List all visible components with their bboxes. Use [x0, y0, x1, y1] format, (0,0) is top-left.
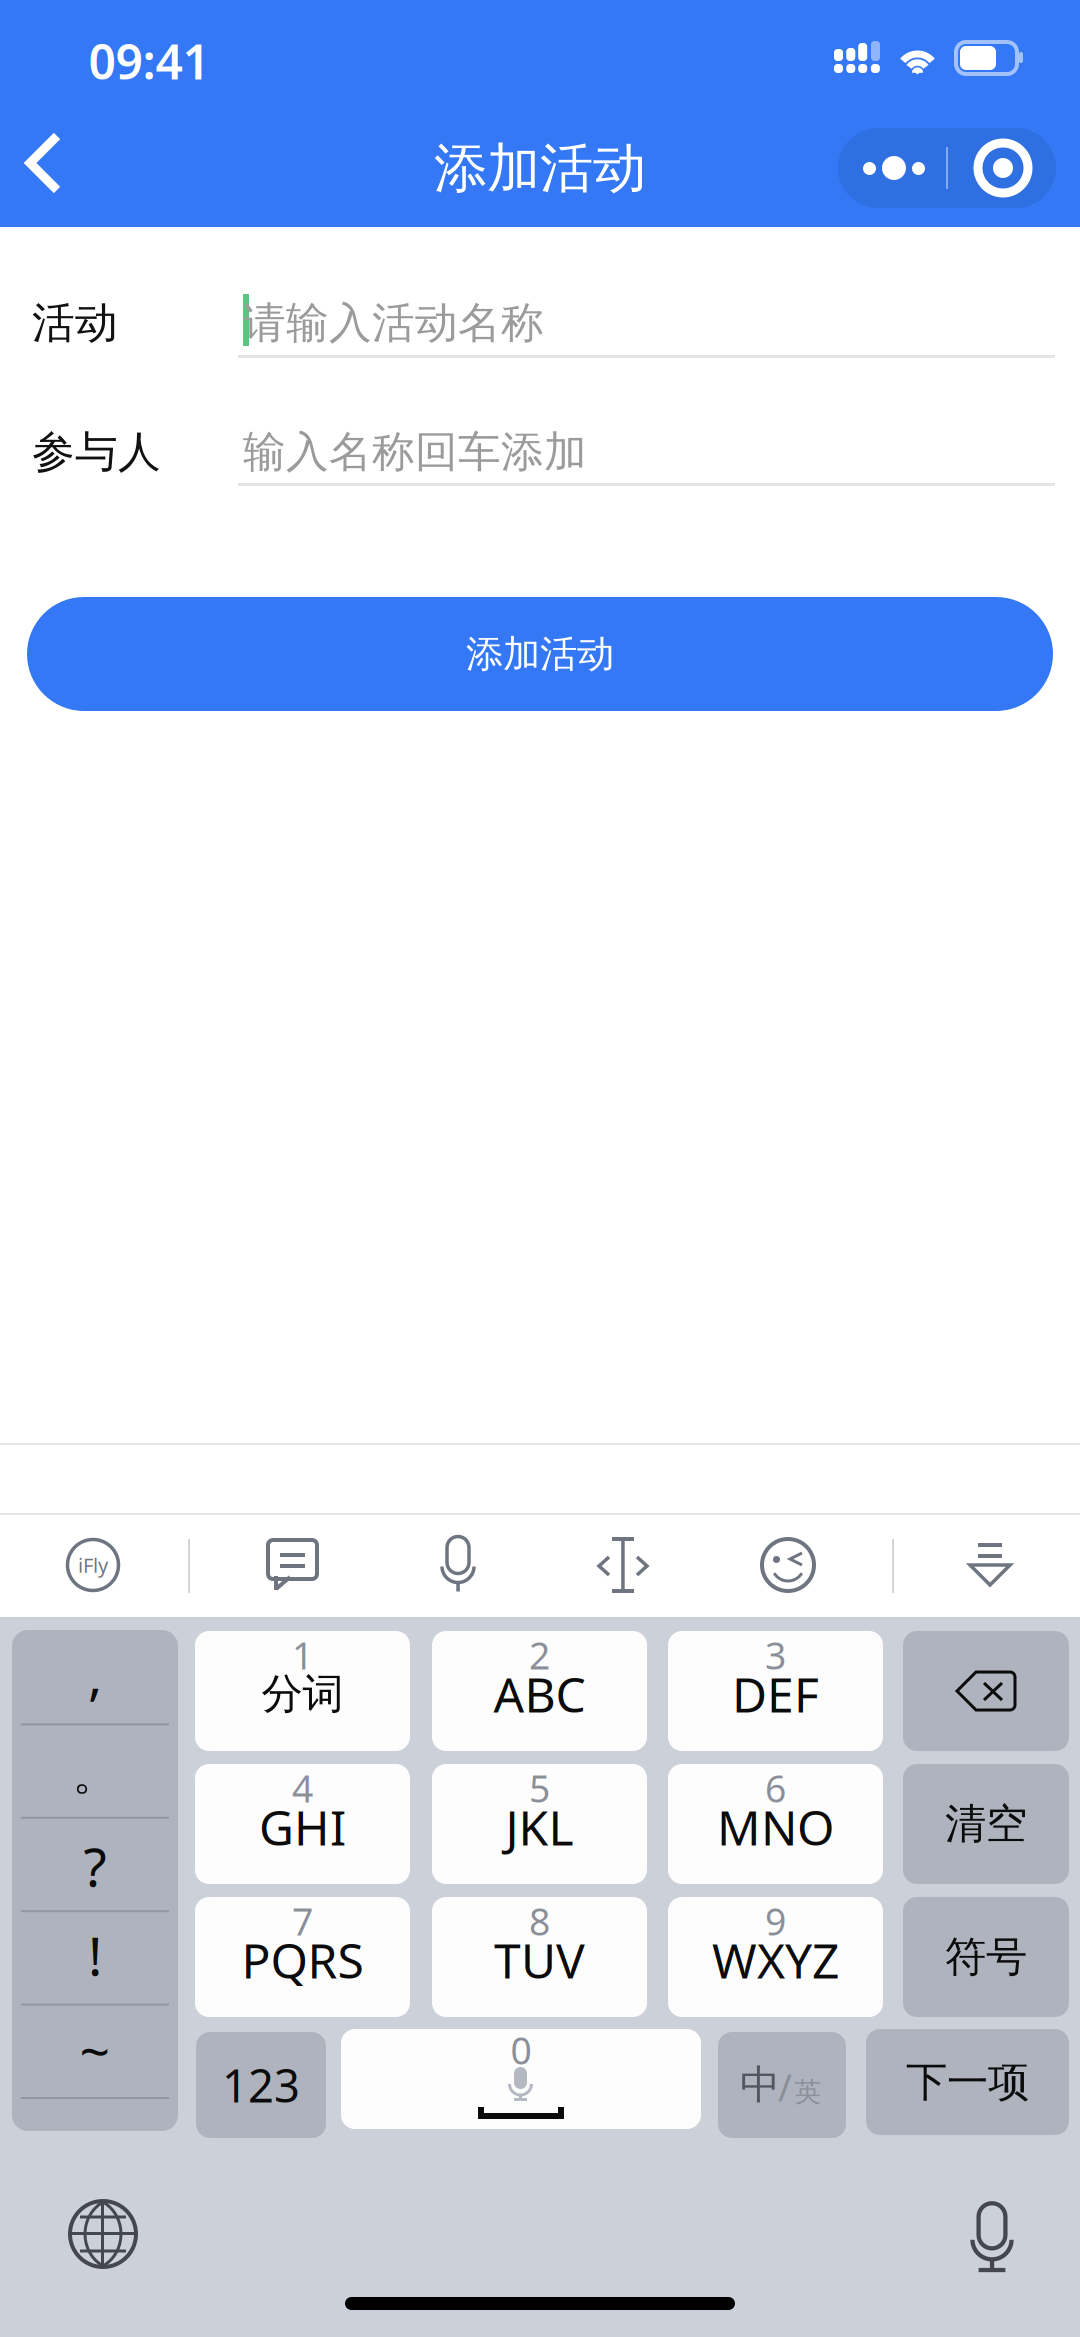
- button[interactable]: Emoji: [728, 1513, 848, 1617]
- staticText: 添加活动: [466, 631, 614, 677]
- button[interactable]: Switch keyboard: [48, 2179, 158, 2289]
- staticText: 9: [765, 1896, 786, 1946]
- button[interactable]: ,: [12, 1630, 178, 1694]
- staticText: !: [88, 1920, 102, 1990]
- staticText: GHI: [259, 1795, 346, 1859]
- staticText: 2: [529, 1630, 550, 1680]
- button[interactable]: 4: [195, 1764, 410, 1884]
- button[interactable]: Dictation: [942, 2183, 1042, 2293]
- button[interactable]: 下一项: [866, 2029, 1069, 2135]
- button[interactable]: 符号: [903, 1897, 1069, 2017]
- button[interactable]: More: [838, 128, 946, 208]
- staticText: 09:41: [88, 29, 209, 93]
- staticText: 请输入活动名称: [243, 297, 544, 349]
- button[interactable]: ~: [12, 1630, 178, 1694]
- button[interactable]: Input method: [33, 1513, 153, 1617]
- staticText: 1: [292, 1630, 313, 1680]
- button[interactable]: Back: [0, 110, 112, 227]
- button[interactable]: 5: [432, 1764, 647, 1884]
- button[interactable]: 9: [668, 1897, 883, 2017]
- staticText: 下一项: [906, 2057, 1029, 2107]
- button[interactable]: 1: [195, 1631, 410, 1751]
- staticText: ABC: [493, 1662, 585, 1726]
- staticText: /: [778, 2062, 792, 2112]
- staticText: JKL: [505, 1795, 573, 1859]
- staticText: 3: [765, 1630, 786, 1680]
- button[interactable]: 8: [432, 1897, 647, 2017]
- staticText: ,: [88, 1639, 102, 1709]
- staticText: 8: [529, 1896, 550, 1946]
- button[interactable]: 6: [668, 1764, 883, 1884]
- button[interactable]: Delete: [903, 1631, 1069, 1751]
- button[interactable]: Move cursor: [563, 1513, 683, 1617]
- button[interactable]: 清空: [903, 1764, 1069, 1884]
- staticText: 0: [510, 2025, 531, 2075]
- staticText: 。: [72, 1746, 117, 1802]
- button[interactable]: Voice input: [398, 1513, 518, 1617]
- staticText: PQRS: [241, 1928, 363, 1992]
- staticText: 6: [765, 1763, 786, 1813]
- button[interactable]: ?: [12, 1630, 178, 1694]
- staticText: 符号: [945, 1932, 1027, 1982]
- staticText: 4: [292, 1763, 313, 1813]
- button[interactable]: Hide keyboard: [930, 1513, 1050, 1617]
- button[interactable]: 。: [12, 1630, 178, 1694]
- staticText: 123: [222, 2055, 300, 2115]
- staticText: MNO: [717, 1795, 834, 1859]
- staticText: 活动: [32, 297, 118, 349]
- button[interactable]: 123: [196, 2032, 326, 2138]
- staticText: 7: [292, 1896, 313, 1946]
- staticText: 清空: [945, 1799, 1027, 1849]
- staticText: ?: [83, 1831, 106, 1901]
- button[interactable]: 2: [432, 1631, 647, 1751]
- button[interactable]: Close: [948, 128, 1056, 208]
- button[interactable]: Phrases: [233, 1513, 353, 1617]
- staticText: 添加活动: [434, 136, 646, 201]
- staticText: 5: [529, 1763, 550, 1813]
- staticText: 输入名称回车添加: [243, 426, 587, 478]
- staticText: 参与人: [32, 426, 161, 478]
- staticText: iFly: [78, 1552, 108, 1578]
- staticText: ~: [79, 2015, 110, 2085]
- button[interactable]: 中: [718, 2032, 846, 2138]
- staticText: TUV: [494, 1928, 585, 1992]
- staticText: WXYZ: [712, 1928, 839, 1992]
- button[interactable]: !: [12, 1630, 178, 1694]
- staticText: 中: [740, 2060, 780, 2109]
- staticText: 分词: [261, 1669, 343, 1719]
- staticText: DEF: [732, 1662, 819, 1726]
- button[interactable]: 3: [668, 1631, 883, 1751]
- button[interactable]: 添加活动: [27, 597, 1053, 711]
- staticText: 英: [794, 2076, 821, 2108]
- button[interactable]: 7: [195, 1897, 410, 2017]
- button[interactable]: Space: [341, 2029, 701, 2129]
